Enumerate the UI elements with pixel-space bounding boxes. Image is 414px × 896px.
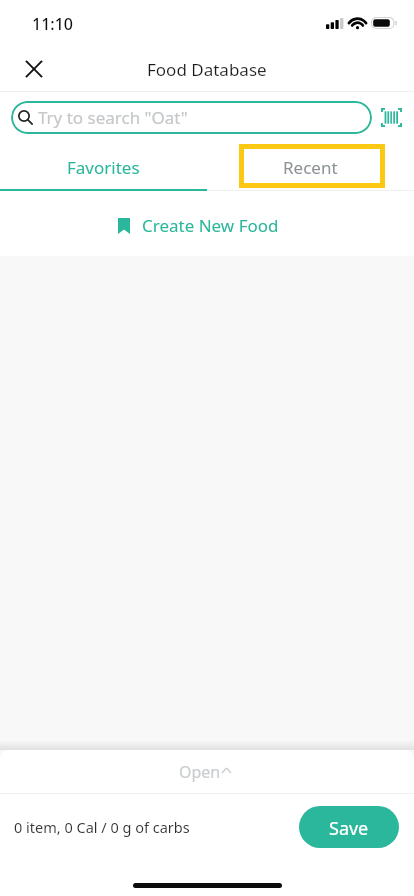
- button[interactable]: Try to search "Oat": [11, 101, 372, 134]
- staticText: Favorites: [67, 156, 140, 179]
- staticText: Open: [179, 761, 221, 783]
- staticText: 0 item, 0 Cal / 0 g of carbs: [14, 817, 190, 837]
- staticText: 11:10: [32, 13, 73, 35]
- button[interactable]: Recent: [207, 140, 414, 191]
- button[interactable]: Create New Food: [0, 191, 414, 256]
- button[interactable]: Close: [12, 47, 56, 91]
- button[interactable]: Save: [299, 806, 399, 848]
- staticText: Create New Food: [142, 214, 279, 237]
- staticText: Save: [329, 816, 369, 841]
- button[interactable]: Favorites: [0, 140, 207, 191]
- button[interactable]: Open: [0, 750, 414, 793]
- staticText: Recent: [283, 156, 338, 179]
- staticText: Food Database: [147, 58, 267, 81]
- button[interactable]: Scan barcode: [378, 104, 404, 130]
- staticText: Try to search "Oat": [38, 106, 188, 129]
